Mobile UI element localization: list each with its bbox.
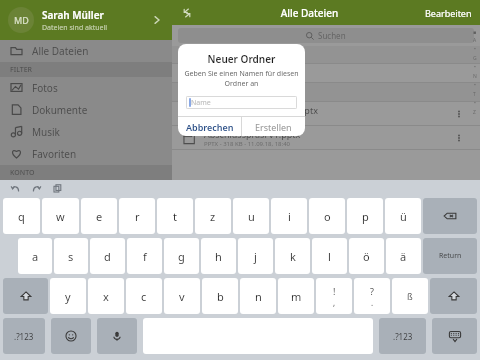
button[interactable]: Alle Dateien — [0, 40, 172, 61]
staticText: ▪ — [473, 29, 477, 35]
staticText: l — [328, 249, 331, 264]
button[interactable]: w — [42, 198, 79, 234]
button[interactable]: Vollbild verlassen — [180, 6, 194, 20]
button[interactable]: a — [18, 238, 52, 274]
staticText: PPTX - 318 KB - 11.09.18, 18:40 — [204, 140, 290, 148]
button[interactable]: Einsetzen — [52, 183, 63, 194]
button[interactable]: Mehr Optionen — [454, 133, 464, 143]
staticText: z — [210, 209, 216, 224]
button[interactable]: Return — [423, 238, 477, 274]
staticText: Dateien sind aktuell — [42, 23, 108, 33]
staticText: • — [474, 64, 476, 71]
staticText: u — [248, 209, 255, 224]
staticText: ß — [407, 290, 413, 302]
staticText: o — [324, 209, 331, 224]
staticText: ! — [333, 285, 336, 297]
button[interactable]: ö — [349, 238, 384, 274]
button[interactable]: Rückschritt — [423, 198, 477, 234]
button[interactable]: q — [3, 198, 40, 234]
button[interactable]: Abbrechen — [178, 117, 241, 136]
button[interactable]: Dokumente — [0, 99, 172, 120]
staticText: .?123 — [14, 331, 34, 342]
button[interactable]: e — [81, 198, 117, 234]
button[interactable]: t — [157, 198, 193, 234]
button[interactable]: .?123 — [3, 318, 45, 354]
button[interactable]: Erstellen — [242, 117, 305, 136]
staticText: ? — [370, 285, 374, 297]
staticText: g — [178, 249, 185, 264]
button[interactable]: Mehr Optionen — [454, 109, 464, 119]
button[interactable]: Diktieren — [97, 318, 137, 354]
staticText: Neuer Ordner — [178, 52, 305, 66]
staticText: w — [56, 209, 65, 224]
staticText: Suchen — [318, 30, 346, 41]
button[interactable]: n — [240, 278, 276, 314]
button[interactable]: l — [312, 238, 347, 274]
button[interactable]: k — [275, 238, 310, 274]
button[interactable]: .?123 — [379, 318, 426, 354]
button[interactable]: c — [126, 278, 162, 314]
button[interactable]: o — [309, 198, 345, 234]
button[interactable]: i — [271, 198, 307, 234]
button[interactable]: g — [164, 238, 199, 274]
staticText: • — [474, 100, 476, 107]
button[interactable]: j — [238, 238, 273, 274]
button[interactable]: Bearbeiten — [425, 7, 472, 19]
button[interactable]: ä — [386, 238, 421, 274]
button[interactable]: y — [50, 278, 86, 314]
staticText: T — [473, 91, 476, 98]
staticText: Abbrechen — [186, 121, 234, 133]
button[interactable]: Rückgängig — [10, 183, 21, 194]
button[interactable]: Musik — [0, 121, 172, 142]
button[interactable]: Suchen — [178, 28, 474, 43]
staticText: MD — [14, 14, 29, 26]
staticText: , — [333, 297, 336, 308]
staticText: Dokumente — [32, 103, 88, 117]
button[interactable]: s — [54, 238, 88, 274]
button[interactable]: Fotos — [0, 77, 172, 98]
staticText: Abschlusspäsentation.pptx — [204, 104, 318, 116]
button[interactable]: Name — [186, 96, 297, 109]
button[interactable]: h — [201, 238, 236, 274]
button[interactable]: Abschlusspräsi v1.pptx — [172, 126, 480, 149]
staticText: Z — [473, 109, 476, 116]
button[interactable]: x — [88, 278, 124, 314]
staticText: r — [135, 209, 140, 224]
button[interactable]: ß — [392, 278, 428, 314]
button[interactable]: ? — [354, 278, 390, 314]
staticText: Geben Sie einen Namen für diesen Ordner … — [184, 69, 299, 89]
button[interactable]: Tastatur ausblenden — [432, 318, 477, 354]
button[interactable]: MD — [0, 0, 172, 40]
button[interactable]: u — [233, 198, 269, 234]
staticText: c — [141, 289, 147, 304]
button[interactable]: p — [347, 198, 383, 234]
staticText: b — [217, 289, 224, 304]
button[interactable]: f — [127, 238, 162, 274]
button[interactable]: Umschalt — [3, 278, 48, 314]
button[interactable]: ! — [316, 278, 352, 314]
staticText: q — [18, 209, 25, 224]
button[interactable]: Wiederholen — [31, 183, 42, 194]
staticText: FILTER — [10, 65, 33, 75]
staticText: • — [474, 82, 476, 89]
button[interactable]: Abschlusspäsentation.pptx — [172, 102, 480, 125]
button[interactable]: d — [90, 238, 125, 274]
staticText: i — [288, 209, 291, 224]
button[interactable]: Favoriten — [0, 143, 172, 164]
button[interactable]: v — [164, 278, 200, 314]
button[interactable]: r — [119, 198, 155, 234]
staticText: . — [371, 297, 374, 308]
staticText: Return — [439, 251, 462, 261]
staticText: Sarah Müller — [42, 8, 104, 22]
button[interactable]: b — [202, 278, 238, 314]
button[interactable]: Emoji — [51, 318, 91, 354]
button[interactable]: z — [195, 198, 231, 234]
staticText: KONTO — [10, 168, 35, 178]
staticText: ö — [363, 249, 370, 264]
staticText: Alle Dateien — [32, 44, 89, 58]
button[interactable]: m — [278, 278, 314, 314]
staticText: A — [473, 37, 477, 44]
button[interactable]: Umschalt — [430, 278, 477, 314]
button[interactable]: ü — [385, 198, 421, 234]
